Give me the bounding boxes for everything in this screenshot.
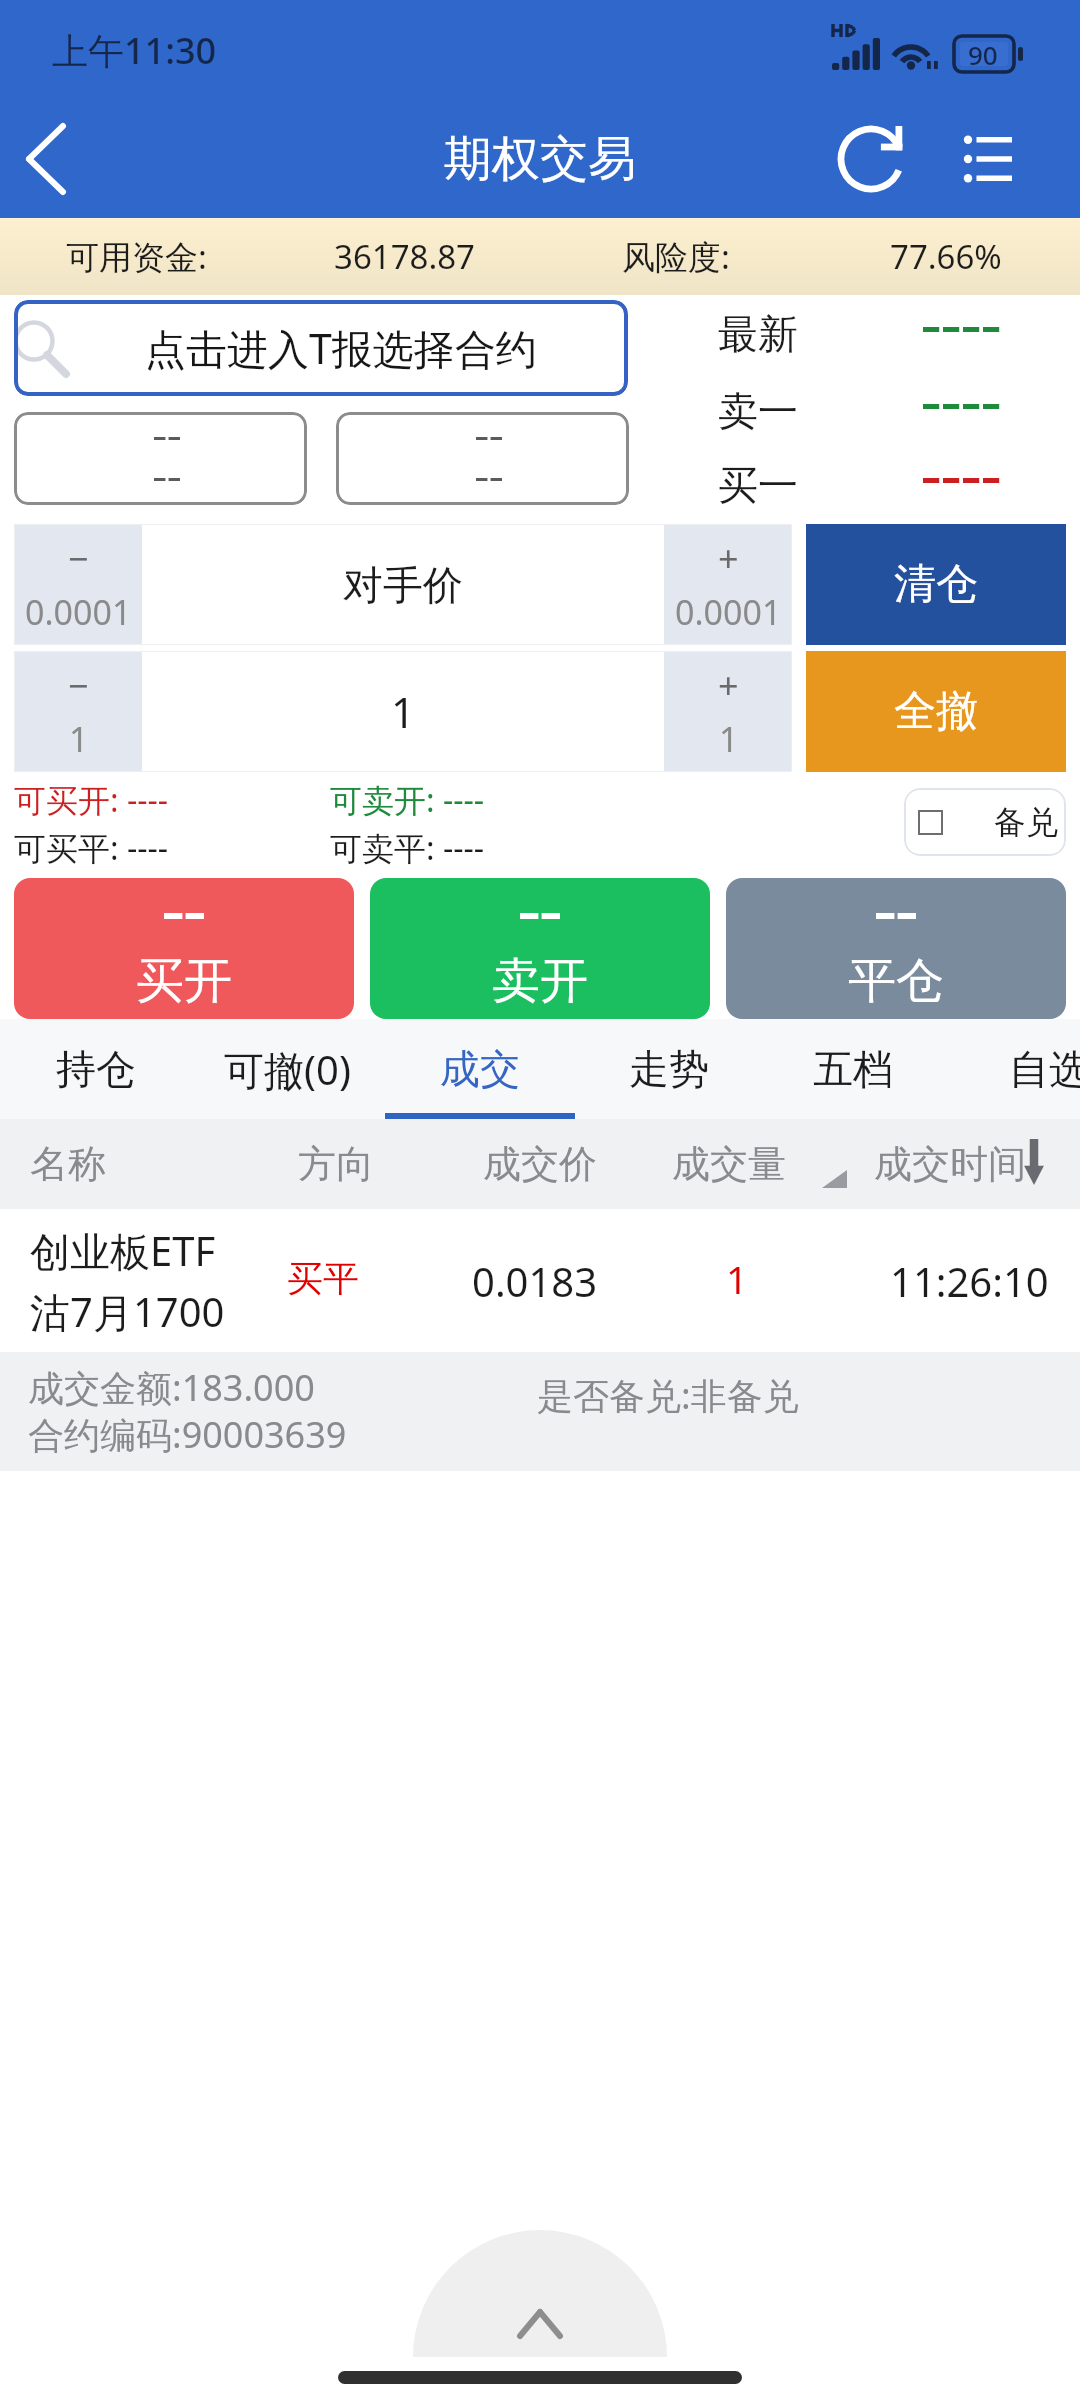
- staticText: 可买平: ----: [14, 826, 169, 870]
- button[interactable]: [336, 412, 629, 505]
- staticText: 1: [69, 716, 89, 762]
- staticText: 可撤(0): [224, 1042, 351, 1097]
- staticText: 成交量: [672, 1140, 786, 1188]
- staticText: 创业板ETF: [30, 1223, 216, 1278]
- button[interactable]: 可撤(0): [192, 1019, 382, 1119]
- staticText: 名称: [30, 1140, 106, 1188]
- staticText: 可用资金:: [66, 234, 207, 279]
- staticText: 自选: [1009, 1044, 1080, 1094]
- staticText: 1: [726, 1253, 748, 1305]
- staticText: 全撤: [894, 685, 978, 738]
- staticText: 可卖平: ----: [330, 826, 485, 870]
- button[interactable]: Menu: [938, 100, 1038, 218]
- button[interactable]: 平仓: [726, 878, 1066, 1019]
- button[interactable]: −: [14, 651, 142, 772]
- staticText: −: [68, 534, 89, 583]
- staticText: 成交价: [483, 1140, 597, 1188]
- staticText: 对手价: [343, 560, 463, 610]
- button[interactable]: +: [664, 651, 792, 772]
- button[interactable]: [14, 412, 307, 505]
- staticText: 沽7月1700: [30, 1284, 225, 1339]
- staticText: 90: [968, 37, 998, 72]
- staticText: 是否备兑:非备兑: [537, 1371, 799, 1420]
- staticText: 11:26:10: [890, 1254, 1049, 1308]
- staticText: 卖一: [718, 386, 798, 436]
- staticText: −: [68, 661, 89, 710]
- button[interactable]: 备兑: [904, 788, 1066, 856]
- button[interactable]: 全撤: [806, 651, 1066, 772]
- staticText: 方向: [298, 1140, 374, 1188]
- staticText: 买一: [718, 460, 798, 510]
- staticText: 清仓: [894, 558, 978, 611]
- staticText: 成交时间: [874, 1140, 1026, 1188]
- staticText: 买开: [136, 951, 232, 1011]
- staticText: 期权交易: [444, 129, 636, 189]
- staticText: 平仓: [848, 951, 944, 1011]
- staticText: 1: [719, 716, 739, 762]
- staticText: 点击进入T报选择合约: [145, 320, 537, 376]
- staticText: 0.0183: [472, 1254, 598, 1308]
- button[interactable]: 清仓: [806, 524, 1066, 645]
- staticText: 0.0001: [675, 589, 782, 635]
- staticText: 1: [391, 683, 416, 740]
- staticText: 36178.87: [334, 234, 475, 279]
- staticText: 备兑: [994, 802, 1058, 842]
- button[interactable]: 创业板ETF: [0, 1209, 1080, 1352]
- button[interactable]: −: [14, 524, 142, 645]
- staticText: 77.66%: [890, 234, 1002, 279]
- staticText: 五档: [813, 1044, 893, 1094]
- staticText: 0.0001: [25, 589, 132, 635]
- staticText: 可卖开: ----: [330, 778, 485, 822]
- button[interactable]: 成交: [385, 1019, 575, 1119]
- staticText: 风险度:: [622, 234, 730, 279]
- staticText: +: [718, 534, 739, 583]
- staticText: 合约编码:90003639: [28, 1410, 347, 1459]
- staticText: 买平: [287, 1256, 359, 1301]
- button[interactable]: 持仓: [1, 1019, 191, 1119]
- staticText: 可买开: ----: [14, 778, 169, 822]
- button[interactable]: Refresh: [808, 100, 938, 218]
- button[interactable]: Back: [0, 100, 92, 218]
- button[interactable]: 自选: [954, 1019, 1080, 1119]
- button[interactable]: 走势: [574, 1019, 764, 1119]
- staticText: 成交金额:183.000: [28, 1363, 315, 1412]
- button[interactable]: 卖开: [370, 878, 710, 1019]
- staticText: 上午11:30: [52, 26, 217, 75]
- staticText: 卖开: [492, 951, 588, 1011]
- staticText: +: [718, 661, 739, 710]
- staticText: 最新: [718, 309, 798, 359]
- button[interactable]: 点击进入T报选择合约: [14, 300, 628, 396]
- staticText: 持仓: [56, 1044, 136, 1094]
- staticText: 走势: [629, 1044, 709, 1094]
- button[interactable]: +: [664, 524, 792, 645]
- staticText: 成交: [440, 1044, 520, 1094]
- button[interactable]: 五档: [758, 1019, 948, 1119]
- button[interactable]: 买开: [14, 878, 354, 1019]
